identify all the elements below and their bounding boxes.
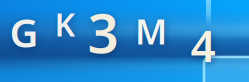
staticText: 4 bbox=[190, 16, 215, 74]
staticText: M bbox=[135, 8, 167, 54]
staticText: G bbox=[9, 5, 38, 58]
staticText: 3 bbox=[87, 0, 118, 68]
staticText: K bbox=[54, 3, 75, 45]
